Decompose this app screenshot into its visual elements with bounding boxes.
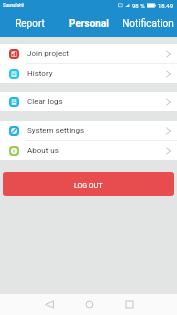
button[interactable]: Clear logs bbox=[0, 92, 177, 111]
staticText: About us bbox=[27, 146, 59, 155]
staticText: 98 % bbox=[132, 2, 145, 9]
button[interactable]: History bbox=[0, 64, 177, 83]
button[interactable]: About us bbox=[0, 141, 177, 160]
button[interactable]: Personal bbox=[59, 10, 118, 37]
button[interactable]: Home bbox=[79, 294, 99, 314]
staticText: Personal bbox=[69, 18, 109, 30]
button[interactable]: Notification bbox=[118, 10, 177, 37]
staticText: LOG OUT bbox=[74, 182, 103, 190]
staticText: 18.49 bbox=[158, 2, 174, 9]
button[interactable]: LOG OUT bbox=[3, 172, 174, 196]
staticText: System settings bbox=[27, 126, 85, 135]
button[interactable]: Report bbox=[0, 10, 59, 37]
button[interactable]: Back bbox=[39, 294, 59, 314]
staticText: Notification bbox=[122, 18, 174, 30]
staticText: Join project bbox=[27, 49, 69, 58]
staticText: Report bbox=[15, 18, 45, 30]
staticText: Saunalahti bbox=[3, 3, 25, 8]
button[interactable]: Recents bbox=[119, 294, 139, 314]
button[interactable]: System settings bbox=[0, 121, 177, 140]
staticText: Clear logs bbox=[27, 97, 63, 106]
staticText: History bbox=[27, 69, 53, 78]
button[interactable]: Join project bbox=[0, 44, 177, 63]
